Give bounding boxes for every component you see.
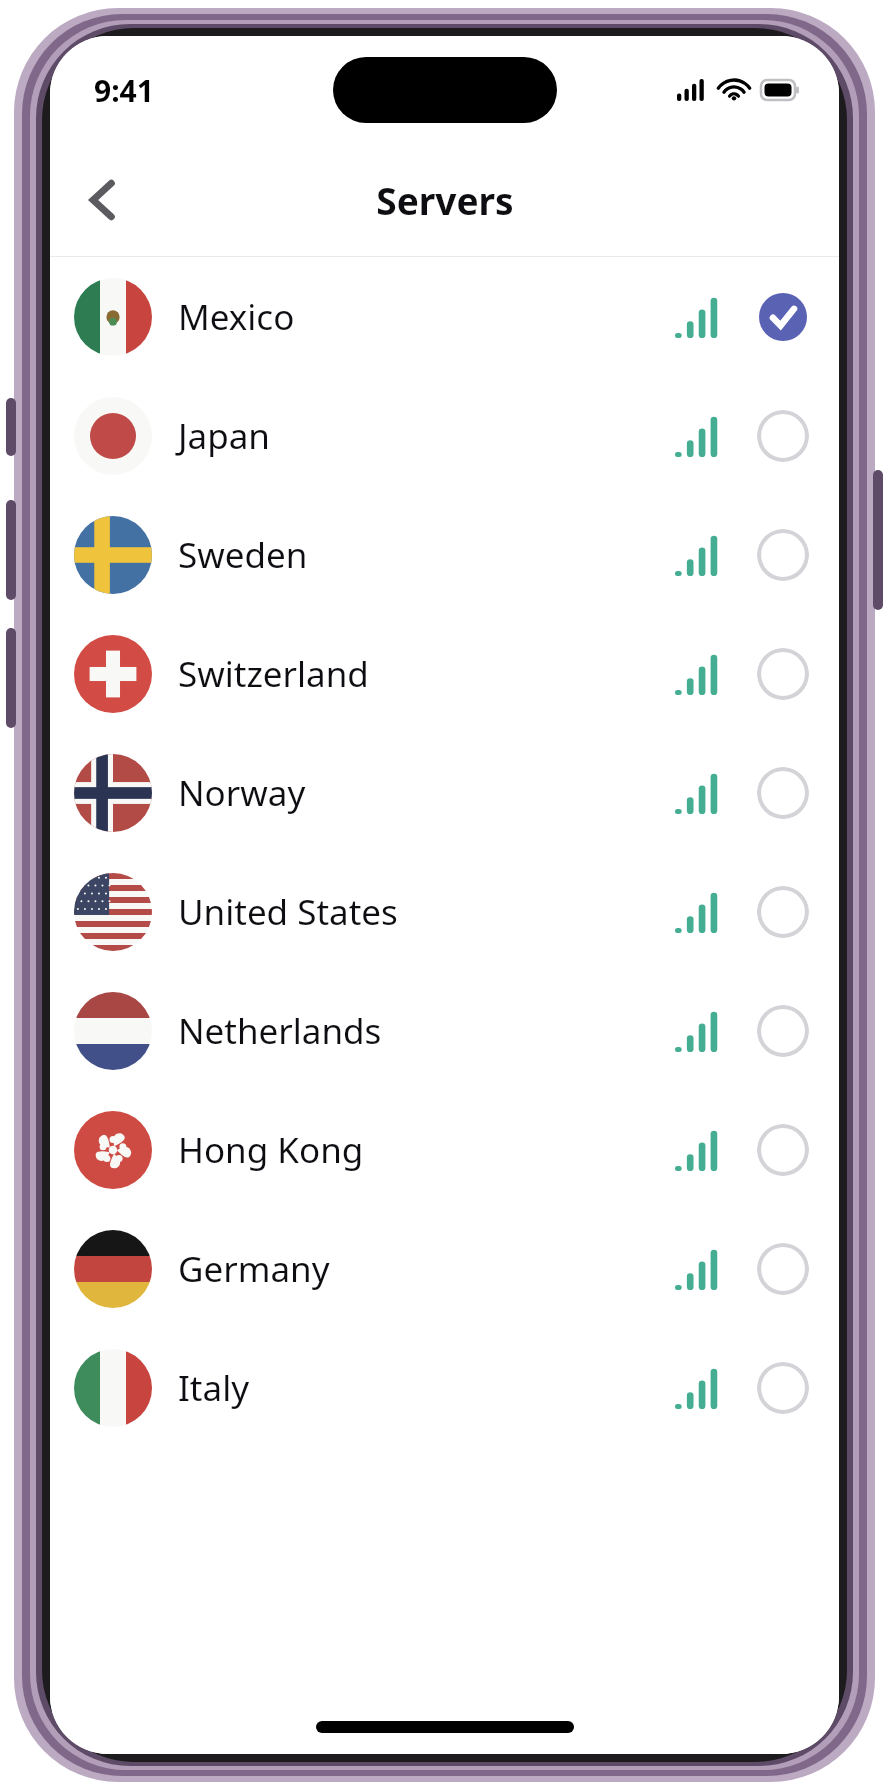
button[interactable]: Norway — [50, 733, 839, 852]
button[interactable]: Select United States — [757, 886, 809, 938]
button[interactable]: Select Italy — [757, 1362, 809, 1414]
button[interactable]: Select Japan — [757, 410, 809, 462]
staticText: Sweden — [178, 531, 308, 579]
button[interactable]: United States — [50, 852, 839, 971]
staticText: Hong Kong — [178, 1126, 364, 1174]
button[interactable]: Italy — [50, 1328, 839, 1447]
button[interactable]: Back — [72, 169, 134, 231]
button[interactable]: Select Germany — [757, 1243, 809, 1295]
button[interactable]: Select Norway — [757, 767, 809, 819]
button[interactable]: Mexico — [50, 257, 839, 376]
staticText: Japan — [178, 412, 270, 460]
staticText: Mexico — [178, 293, 295, 341]
button[interactable]: Select Switzerland — [757, 648, 809, 700]
staticText: Italy — [178, 1364, 250, 1412]
staticText: United States — [178, 888, 398, 936]
staticText: Netherlands — [178, 1007, 382, 1055]
button[interactable]: Selected — [757, 291, 809, 343]
button[interactable]: Hong Kong — [50, 1090, 839, 1209]
button[interactable]: Select Netherlands — [757, 1005, 809, 1057]
button[interactable]: Sweden — [50, 495, 839, 614]
button[interactable]: Select Sweden — [757, 529, 809, 581]
button[interactable]: Germany — [50, 1209, 839, 1328]
staticText: Norway — [178, 769, 306, 817]
button[interactable]: Japan — [50, 376, 839, 495]
button[interactable]: Select Hong Kong — [757, 1124, 809, 1176]
staticText: 9:41 — [94, 70, 154, 111]
staticText: Switzerland — [178, 650, 369, 698]
staticText: Germany — [178, 1245, 330, 1293]
button[interactable]: Switzerland — [50, 614, 839, 733]
button[interactable]: Netherlands — [50, 971, 839, 1090]
staticText: Servers — [376, 175, 514, 225]
